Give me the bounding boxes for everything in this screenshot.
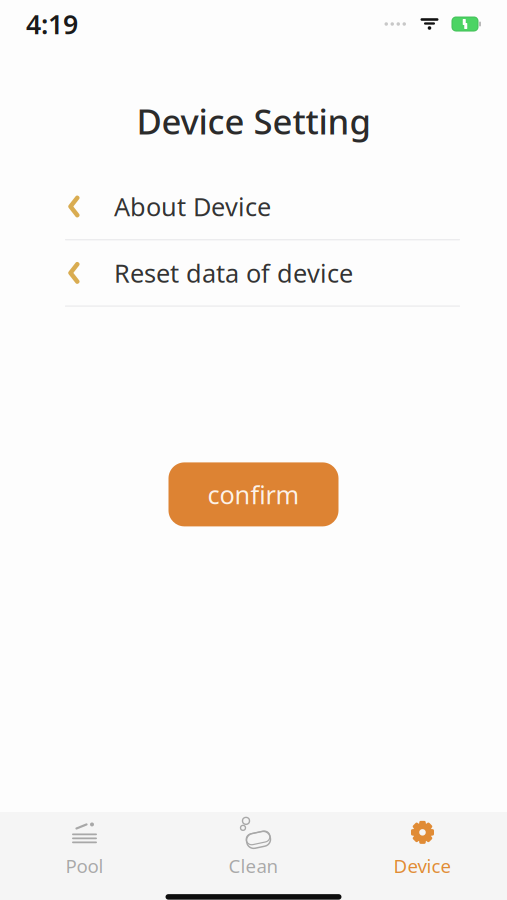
staticText: Pool — [65, 853, 103, 878]
staticText: About Device — [114, 190, 271, 223]
staticText: Clean — [228, 853, 278, 878]
button[interactable]: Clean — [169, 809, 338, 886]
button[interactable]: confirm — [168, 462, 338, 526]
staticText: confirm — [207, 478, 299, 511]
button[interactable]: Device — [338, 809, 507, 886]
staticText: 4:19 — [26, 6, 78, 42]
staticText: Device Setting — [136, 98, 370, 144]
button[interactable]: Pool — [0, 809, 169, 886]
button[interactable]: About Device — [0, 174, 507, 240]
staticText: Device — [393, 853, 451, 878]
staticText: Reset data of device — [114, 256, 353, 290]
button[interactable]: Reset data of device — [0, 240, 507, 307]
